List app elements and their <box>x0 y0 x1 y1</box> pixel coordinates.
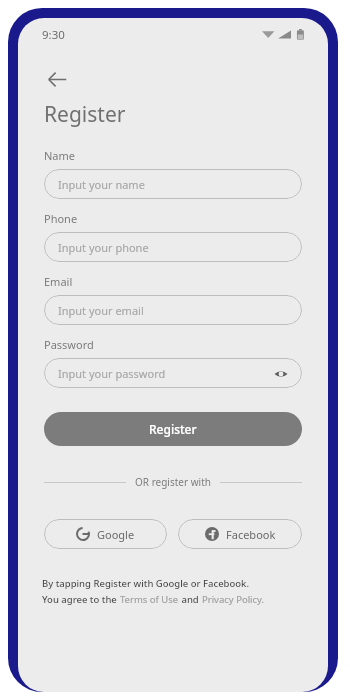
staticText: Input your email <box>58 303 144 318</box>
staticText: Input your name <box>58 177 145 192</box>
staticText: Input your password <box>58 366 166 381</box>
button[interactable]: Input your password <box>44 358 302 388</box>
staticText: and <box>179 593 202 606</box>
button[interactable]: Input your email <box>44 295 302 325</box>
button[interactable]: Input your name <box>44 169 302 199</box>
button[interactable]: Facebook <box>178 519 302 549</box>
staticText: Phone <box>44 211 78 226</box>
staticText: Email <box>44 274 73 289</box>
staticText: Google <box>97 527 135 542</box>
staticText: OR register with <box>135 475 211 489</box>
staticText: Input your phone <box>58 240 149 255</box>
button[interactable]: Input your phone <box>44 232 302 262</box>
button[interactable]: Google <box>44 519 167 549</box>
staticText: By tapping Register with Google or Faceb… <box>42 577 249 590</box>
button[interactable]: Back <box>40 62 74 96</box>
button[interactable]: Register <box>44 412 302 446</box>
staticText: 9:30 <box>42 27 65 43</box>
staticText: Name <box>44 148 76 163</box>
staticText: Register <box>44 100 126 129</box>
staticText: Facebook <box>226 527 276 542</box>
staticText: Password <box>44 337 94 352</box>
button[interactable]: Show password <box>272 365 289 382</box>
button[interactable]: Terms of Use <box>120 593 179 606</box>
staticText: Register <box>149 421 197 437</box>
staticText: You agree to the <box>42 593 120 606</box>
button[interactable]: Privacy Policy. <box>202 593 265 606</box>
